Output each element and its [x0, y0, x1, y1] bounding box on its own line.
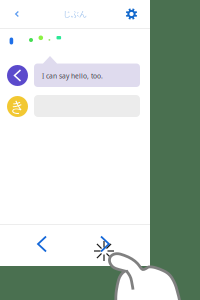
- button[interactable]: Back: [3, 0, 31, 28]
- staticText: き: [10, 97, 25, 115]
- staticText: I can say hello, too.: [42, 72, 103, 80]
- button[interactable]: Next: [85, 224, 125, 264]
- staticText: じぶん: [63, 9, 87, 19]
- button[interactable]: Settings: [118, 0, 144, 28]
- button[interactable]: Previous: [22, 224, 62, 264]
